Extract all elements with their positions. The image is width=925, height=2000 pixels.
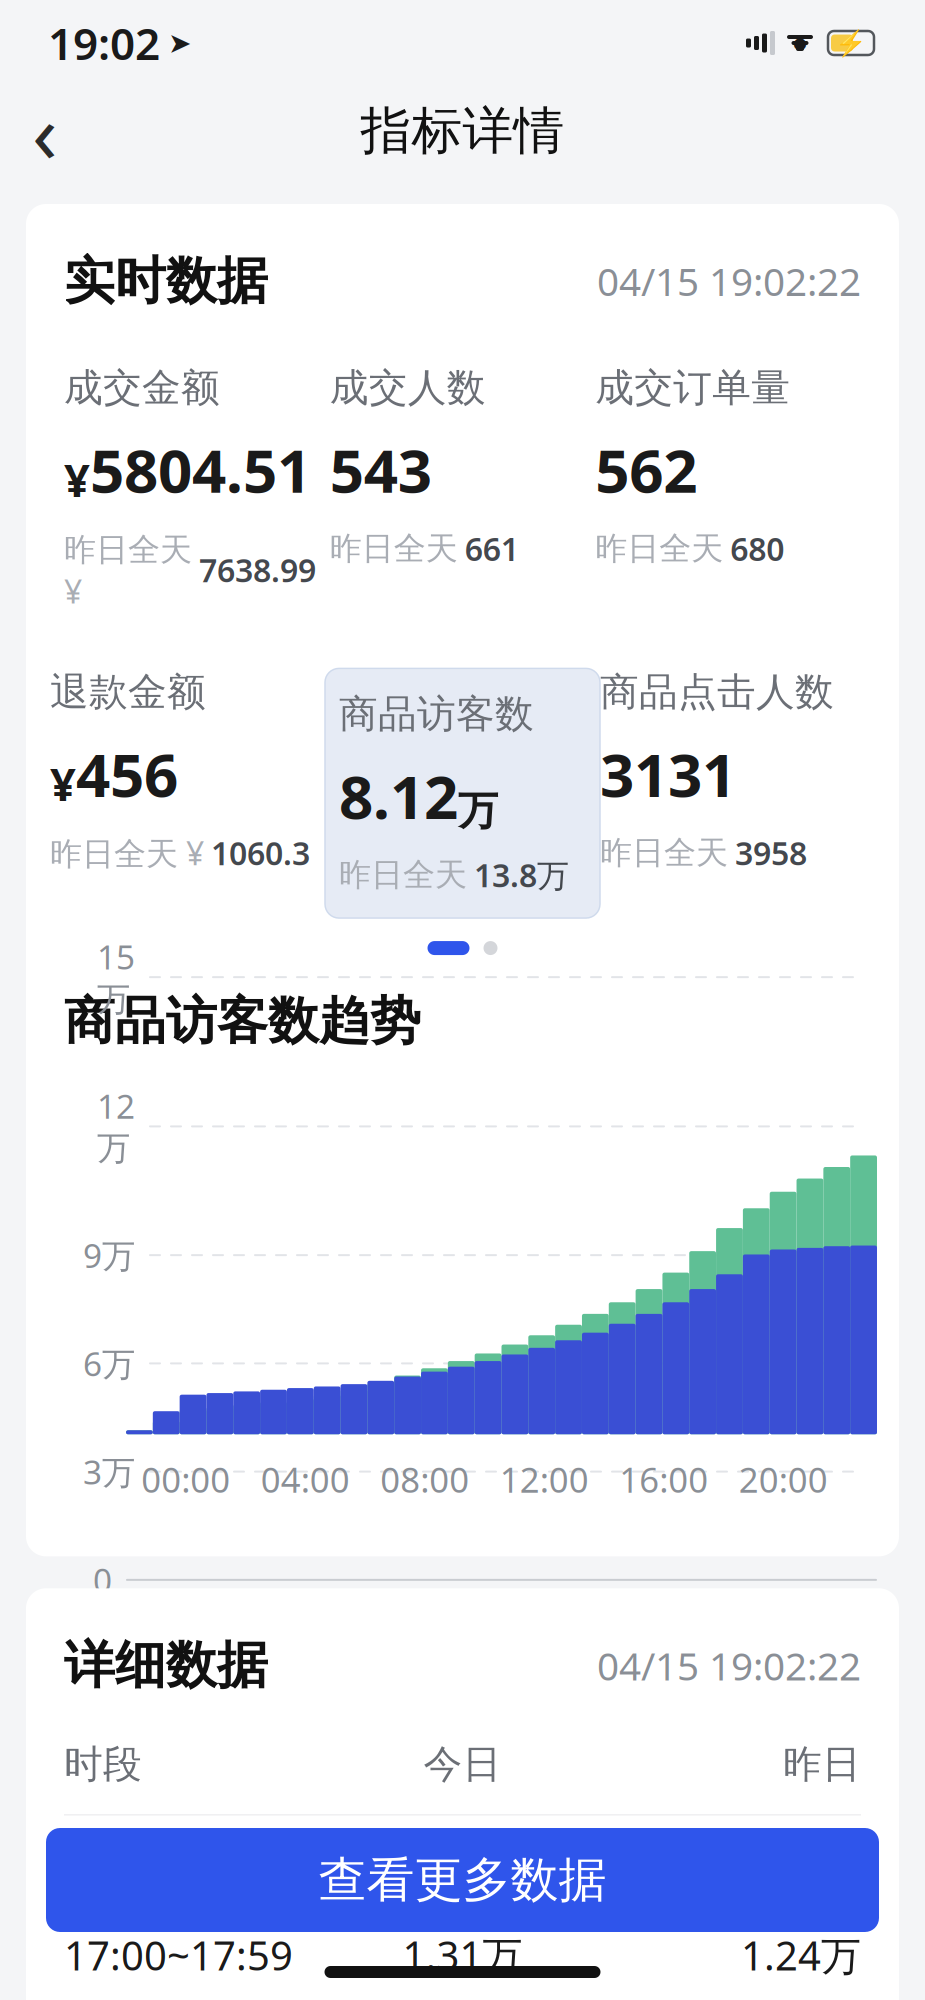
- staticText: 指标详情: [360, 100, 564, 162]
- staticText: ‹: [32, 76, 58, 186]
- staticText: 08:00: [380, 1456, 469, 1502]
- staticText: 昨日全天 ¥: [50, 832, 204, 874]
- button[interactable]: 查看更多数据: [46, 1828, 879, 1932]
- staticText: ➤: [168, 27, 191, 59]
- staticText: 562: [595, 430, 697, 509]
- staticText: 昨日全天: [595, 529, 723, 568]
- staticText: 实时数据: [64, 250, 268, 312]
- staticText: 00:00: [141, 1456, 230, 1502]
- staticText: 543: [330, 430, 432, 509]
- staticText: 8.12: [339, 756, 458, 836]
- staticText: 3131: [600, 734, 736, 814]
- button[interactable]: 返回: [0, 88, 90, 174]
- staticText: 成交订单量: [595, 364, 790, 412]
- staticText: 1.31万: [402, 1928, 522, 1982]
- staticText: ¥: [64, 449, 90, 509]
- staticText: 9万: [83, 1233, 135, 1277]
- staticText: 12万: [97, 1084, 135, 1169]
- staticText: 13.8万: [474, 854, 569, 896]
- staticText: 456: [76, 734, 178, 814]
- staticText: 04:00: [261, 1456, 350, 1502]
- staticText: 退款金额: [50, 668, 206, 716]
- staticText: 详细数据: [64, 1634, 268, 1696]
- staticText: 昨日全天 ¥: [64, 527, 192, 612]
- staticText: 昨日全天: [330, 529, 458, 568]
- staticText: 17:00~17:59: [64, 1928, 293, 1982]
- staticText: 时段: [64, 1741, 142, 1788]
- staticText: 15万: [97, 935, 135, 1020]
- staticText: 04/15 19:02:22: [597, 255, 861, 307]
- staticText: 商品访客数趋势: [64, 990, 421, 1052]
- staticText: 昨日: [783, 1741, 861, 1788]
- staticText: 今日: [423, 1741, 501, 1788]
- staticText: 万: [458, 786, 498, 835]
- staticText: 1060.3: [211, 832, 310, 874]
- staticText: 成交金额: [64, 364, 220, 412]
- staticText: 成交人数: [330, 364, 486, 412]
- button[interactable]: 商品访客数: [325, 668, 600, 918]
- staticText: 0: [93, 1558, 112, 1602]
- staticText: ⚡: [835, 28, 867, 57]
- staticText: 7638.99: [199, 549, 316, 591]
- staticText: 5804.51: [90, 430, 311, 509]
- staticText: 661: [465, 527, 519, 570]
- staticText: 6835: [416, 1835, 508, 1888]
- staticText: 20:00: [739, 1456, 828, 1502]
- staticText: 19:02: [48, 14, 160, 72]
- staticText: ¥: [50, 753, 76, 814]
- staticText: 查看更多数据: [318, 1850, 606, 1909]
- staticText: 商品点击人数: [600, 668, 834, 716]
- staticText: 04/15 19:02:22: [597, 1640, 861, 1691]
- staticText: 3958: [735, 832, 807, 874]
- staticText: 680: [730, 527, 784, 570]
- staticText: 1.24万: [741, 1928, 861, 1982]
- staticText: ●: [793, 34, 807, 52]
- staticText: 3万: [83, 1449, 135, 1494]
- staticText: 昨日全天: [339, 855, 467, 894]
- staticText: 12:00: [500, 1456, 589, 1502]
- staticText: 16:00: [619, 1456, 708, 1502]
- staticText: 昨日全天: [600, 833, 728, 872]
- staticText: 6万: [83, 1341, 135, 1385]
- staticText: 商品访客数: [339, 690, 534, 738]
